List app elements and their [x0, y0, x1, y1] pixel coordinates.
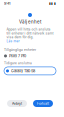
staticText: Tidigare anslutna: [4, 61, 32, 65]
staticText: ▮▮ ▮: [49, 2, 56, 5]
staticText: 9:41: [4, 1, 11, 6]
staticText: Pixel 7 Pro: [9, 54, 26, 58]
staticText: Galaxy Tab S8: [11, 69, 35, 73]
staticText: Fortsätt: [37, 101, 49, 106]
staticText: Avbryt: [12, 101, 22, 106]
staticText: Läs mer: [6, 39, 19, 43]
staticText: Välj enhet: [19, 19, 41, 24]
staticText: Tillgängliga enheter: [4, 48, 36, 52]
staticText: Appen vill hitta och ansluta till enhete…: [6, 27, 53, 39]
